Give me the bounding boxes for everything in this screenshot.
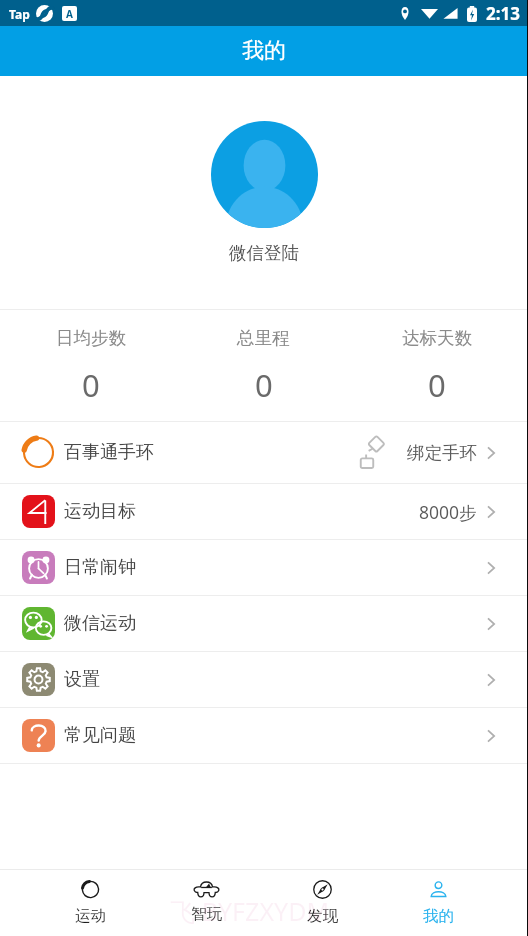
staticText: 日均步数 (56, 327, 126, 349)
staticText: 0 (82, 364, 100, 406)
button[interactable]: 常见问题 (0, 708, 528, 763)
other: 运动 (81, 880, 100, 899)
button[interactable]: 日常闹钟 (0, 540, 528, 595)
staticText: 0 (428, 364, 446, 406)
staticText: 达标天数 (402, 327, 472, 349)
staticText: 常见问题 (64, 724, 136, 747)
staticText: 绑定手环 (407, 442, 477, 464)
staticText: 总里程 (237, 327, 290, 349)
other: 绑定手环 (360, 437, 385, 468)
staticText: A (66, 7, 73, 21)
staticText: 我的 (423, 906, 454, 926)
staticText: 运动目标 (64, 500, 136, 523)
staticText: 8000步 (419, 500, 477, 524)
staticText: 运动 (75, 906, 106, 926)
button[interactable]: 运动目标 (0, 484, 528, 539)
staticText: 发现 (307, 906, 338, 926)
staticText: 飞·BYFZXYDM (170, 894, 330, 928)
staticText: 0 (255, 364, 273, 406)
staticText: 设置 (64, 668, 100, 691)
staticText: 微信运动 (64, 612, 136, 635)
button[interactable]: 我的 (380, 870, 496, 936)
staticText: 2:13 (486, 2, 520, 25)
other: 我的 (429, 880, 448, 899)
staticText: 百事通手环 (64, 441, 154, 464)
button[interactable]: 发现 (264, 870, 380, 936)
other: 发现 (313, 880, 332, 899)
staticText: 日常闹钟 (64, 556, 136, 579)
button[interactable]: 运动 (32, 870, 148, 936)
staticText: Tap (9, 6, 30, 22)
staticText: 我的 (242, 37, 286, 65)
button[interactable]: 智玩 (148, 870, 264, 936)
other: 智玩 (194, 880, 219, 897)
staticText: 智玩 (191, 904, 222, 924)
button[interactable]: 百事通手环 (0, 422, 528, 483)
button[interactable]: 设置 (0, 652, 528, 707)
staticText: 微信登陆 (229, 242, 299, 264)
button[interactable]: 微信运动 (0, 596, 528, 651)
